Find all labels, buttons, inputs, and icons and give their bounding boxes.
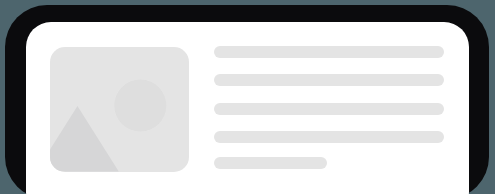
button[interactable]: Image placeholder xyxy=(50,47,189,172)
